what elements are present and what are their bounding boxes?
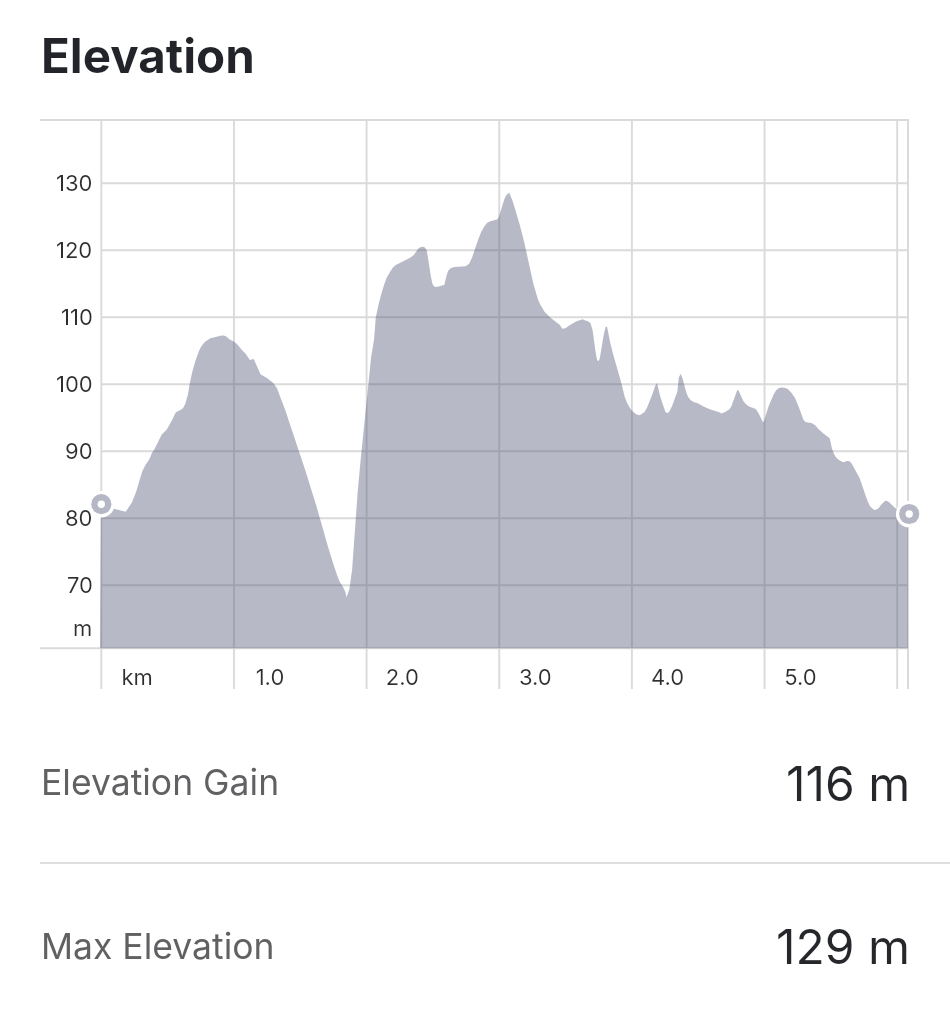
staticText: Max Elevation — [41, 925, 275, 968]
button[interactable]: Elevation Gain — [0, 703, 950, 862]
staticText: 116 m — [786, 754, 911, 812]
staticText: Elevation Gain — [41, 761, 280, 804]
staticText: 129 m — [776, 917, 911, 975]
other: Elevation profile chart — [0, 0, 950, 1024]
button[interactable]: Max Elevation — [0, 864, 950, 1024]
